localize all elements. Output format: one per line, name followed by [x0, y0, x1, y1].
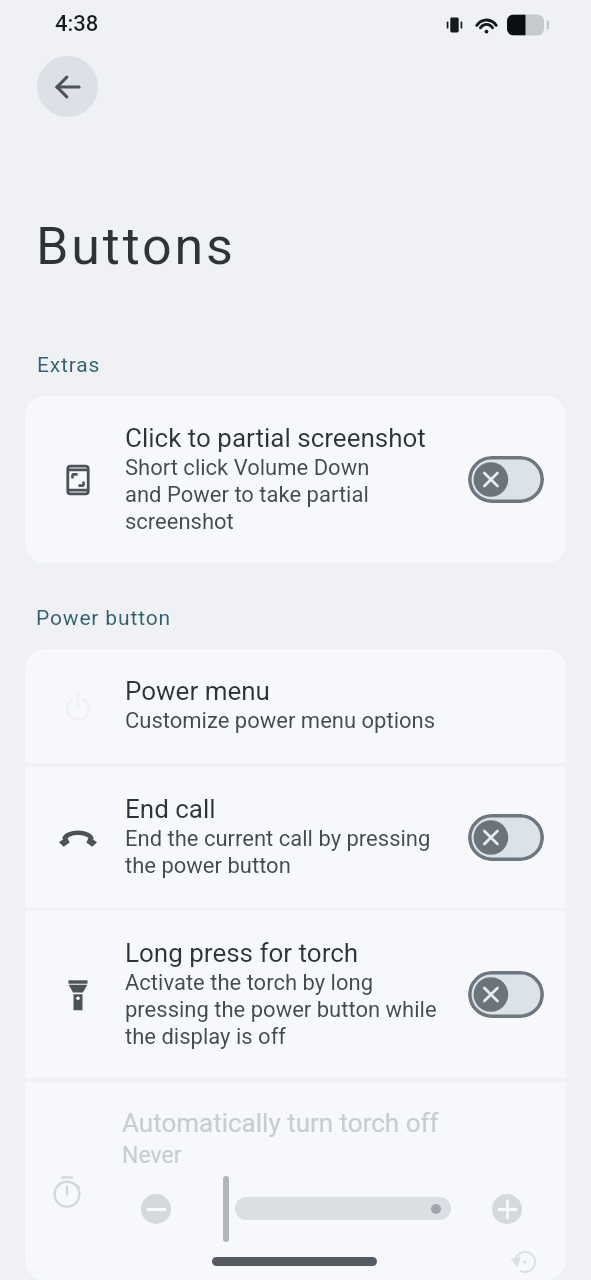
staticText: Activate the torch by long pressing the …	[125, 970, 437, 1050]
staticText: Buttons	[36, 216, 236, 277]
button[interactable]: Power menu	[25, 649, 566, 763]
button[interactable]: Toggle	[468, 971, 544, 1018]
staticText: Never	[122, 1142, 182, 1169]
button[interactable]: Long press for torch	[25, 911, 566, 1078]
staticText: End the current call by pressing the pow…	[125, 826, 431, 879]
button[interactable]: Reset	[511, 1248, 539, 1276]
staticText: Click to partial screenshot	[125, 423, 426, 453]
button[interactable]: Back	[37, 56, 98, 117]
button[interactable]: Increase	[492, 1194, 522, 1224]
staticText: Long press for torch	[125, 938, 359, 968]
button[interactable]: Decrease	[141, 1194, 171, 1224]
staticText: Automatically turn torch off	[122, 1108, 439, 1138]
button[interactable]: Toggle	[468, 456, 544, 503]
staticText: 4:38	[55, 11, 99, 37]
staticText: Power button	[36, 606, 171, 631]
button[interactable]: Toggle	[468, 814, 544, 861]
button[interactable]: End call	[25, 767, 566, 908]
button[interactable]: Click to partial screenshot	[25, 396, 566, 563]
staticText: Customize power menu options	[125, 708, 436, 734]
staticText: Extras	[37, 353, 101, 378]
staticText: Power menu	[125, 676, 270, 706]
staticText: End call	[125, 794, 216, 824]
staticText: Short click Volume Down and Power to tak…	[125, 455, 370, 535]
